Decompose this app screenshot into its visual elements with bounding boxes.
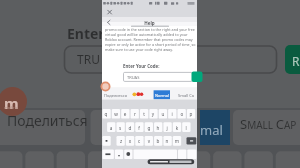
staticText: mail.ru xyxy=(4,105,18,110)
staticText: e xyxy=(121,111,129,117)
staticText: q xyxy=(102,111,110,117)
staticText: g xyxy=(145,125,153,131)
staticText: n xyxy=(163,138,171,144)
staticText: promo code in the section to the right a… xyxy=(105,27,195,32)
button[interactable]: Redeem xyxy=(285,45,300,74)
staticText: Roblox account. Remember that promo code… xyxy=(105,37,193,42)
staticText: j xyxy=(163,125,171,131)
staticText: l xyxy=(182,125,190,131)
staticText: p xyxy=(187,111,195,117)
staticText: m xyxy=(4,93,19,113)
staticText: t xyxy=(140,111,148,117)
staticText: m xyxy=(173,138,181,144)
staticText: d xyxy=(126,125,134,131)
staticText: u xyxy=(159,111,167,117)
staticText: h xyxy=(154,125,162,131)
staticText: r xyxy=(131,111,139,117)
staticText: virtual good will be automatically added… xyxy=(105,32,188,37)
staticText: s xyxy=(116,125,124,131)
staticText: Enter Your Code: xyxy=(123,63,160,69)
staticText: b xyxy=(154,138,162,144)
staticText: TRUAS xyxy=(127,75,140,80)
staticText: y xyxy=(149,111,157,117)
staticText: c xyxy=(135,138,143,144)
staticText: x xyxy=(126,138,134,144)
staticText: make sure to use your code right away. xyxy=(105,47,173,52)
staticText: o xyxy=(178,111,186,117)
staticText: Help xyxy=(102,20,197,26)
staticText: Поделиться xyxy=(7,111,88,130)
staticText: k xyxy=(173,125,181,131)
staticText: w xyxy=(112,111,120,117)
staticText: v xyxy=(145,138,153,144)
staticText: Enter xyxy=(67,24,105,43)
staticText: expire or only be active for a short per… xyxy=(105,42,196,47)
staticText: i xyxy=(168,111,176,117)
staticText: f xyxy=(135,125,143,131)
staticText: mal xyxy=(200,121,223,139)
staticText: Small Ca xyxy=(178,93,195,98)
staticText: z xyxy=(117,138,125,144)
staticText: Normal xyxy=(154,93,170,98)
staticText: a xyxy=(107,125,115,131)
staticText: Поделиться xyxy=(104,93,128,98)
staticText: R xyxy=(292,53,300,69)
staticText: SMALL CAP xyxy=(240,115,297,133)
staticText: TRU xyxy=(77,51,100,67)
